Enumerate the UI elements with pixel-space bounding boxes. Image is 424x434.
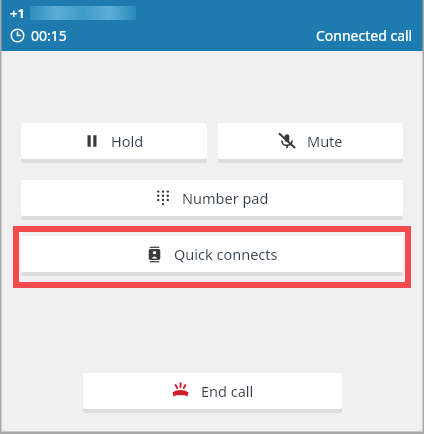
button[interactable]: Number pad (21, 180, 403, 216)
button[interactable]: Quick connects (21, 236, 403, 272)
staticText: End call (201, 381, 254, 401)
button[interactable]: Mute (218, 123, 403, 159)
button[interactable]: Hold (21, 123, 207, 159)
other: End call (171, 382, 190, 401)
other: Mute (278, 132, 296, 150)
other: Quick connects (146, 246, 163, 263)
other: Hold (84, 133, 100, 149)
other: Number pad (155, 190, 171, 206)
staticText: Quick connects (174, 244, 278, 264)
staticText: Connected call (316, 26, 413, 45)
staticText: Number pad (182, 188, 269, 208)
staticText: Mute (307, 131, 343, 151)
staticText: 00:15 (31, 26, 67, 45)
staticText: +1 (10, 4, 25, 22)
staticText: Hold (111, 131, 144, 151)
button[interactable]: End call (83, 373, 342, 409)
